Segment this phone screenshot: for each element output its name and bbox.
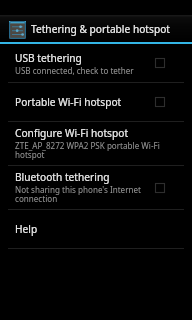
staticText: Not sharing this phone's Internet connec… [15, 184, 155, 205]
button[interactable]: Bluetooth tethering [0, 166, 192, 210]
other: Settings [9, 21, 26, 39]
staticText: Portable Wi-Fi hotspot [15, 95, 122, 109]
button[interactable]: Help [0, 210, 192, 249]
staticText: Configure Wi-Fi hotspot [15, 126, 129, 140]
button[interactable]: Configure Wi-Fi hotspot [0, 122, 192, 166]
staticText: Bluetooth tethering [15, 170, 110, 184]
staticText: Tethering & portable hotspot [31, 22, 171, 36]
staticText: USB tethering [15, 51, 82, 65]
button[interactable]: Portable Wi-Fi hotspot [0, 83, 192, 122]
staticText: Help [15, 222, 38, 236]
button[interactable]: USB tethering [0, 44, 192, 83]
staticText: USB connected, check to tether [15, 65, 134, 76]
staticText: ZTE_AP_8272 WPA2 PSK portable Wi-Fi hots… [15, 140, 177, 161]
